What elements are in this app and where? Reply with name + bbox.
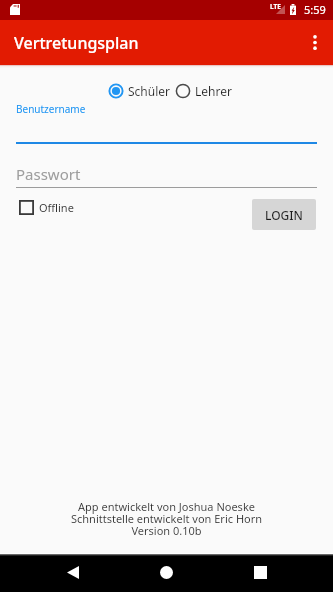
staticText: Schüler [128, 83, 171, 99]
staticText: Passwort [16, 164, 81, 184]
staticText: Offline [39, 200, 74, 215]
button[interactable]: More options [295, 20, 333, 65]
staticText: LTE [270, 2, 281, 11]
staticText: Benutzername [16, 102, 86, 116]
staticText: App entwickelt von Joshua Noeske Schnitt… [0, 499, 333, 538]
button[interactable]: Passwort [16, 161, 317, 188]
staticText: 5:59 [304, 2, 326, 17]
button[interactable]: Recents [240, 554, 280, 592]
button[interactable]: Lehrer [175, 83, 232, 99]
button[interactable]: Back [53, 554, 93, 592]
staticText: LOGIN [265, 207, 303, 223]
button[interactable]: Benutzername [16, 101, 317, 144]
button[interactable]: Schüler [108, 83, 171, 99]
staticText: Vertretungsplan [14, 32, 139, 54]
staticText: Lehrer [195, 83, 232, 99]
button[interactable]: LOGIN [252, 199, 316, 230]
button[interactable]: Home [146, 554, 186, 592]
button[interactable]: Offline [13, 195, 80, 220]
